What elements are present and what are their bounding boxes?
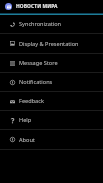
staticText: Message Store — [19, 59, 58, 67]
staticText: Display & Presentation — [19, 40, 79, 48]
staticText: About — [19, 136, 35, 144]
button[interactable]: Help — [0, 111, 103, 130]
button[interactable]: Feedback — [0, 92, 103, 111]
staticText: НОВОСТИ МИРА — [16, 3, 58, 10]
button[interactable]: Notifications — [0, 73, 103, 92]
button[interactable]: Display & Presentation — [0, 34, 103, 54]
staticText: Synchronization — [19, 20, 62, 28]
staticText: Help — [19, 116, 32, 124]
button[interactable]: Message Store — [0, 54, 103, 73]
button[interactable]: Synchronization — [0, 15, 103, 34]
button[interactable]: About — [0, 130, 103, 150]
staticText: Feedback — [19, 97, 44, 105]
staticText: Notifications — [19, 78, 53, 86]
